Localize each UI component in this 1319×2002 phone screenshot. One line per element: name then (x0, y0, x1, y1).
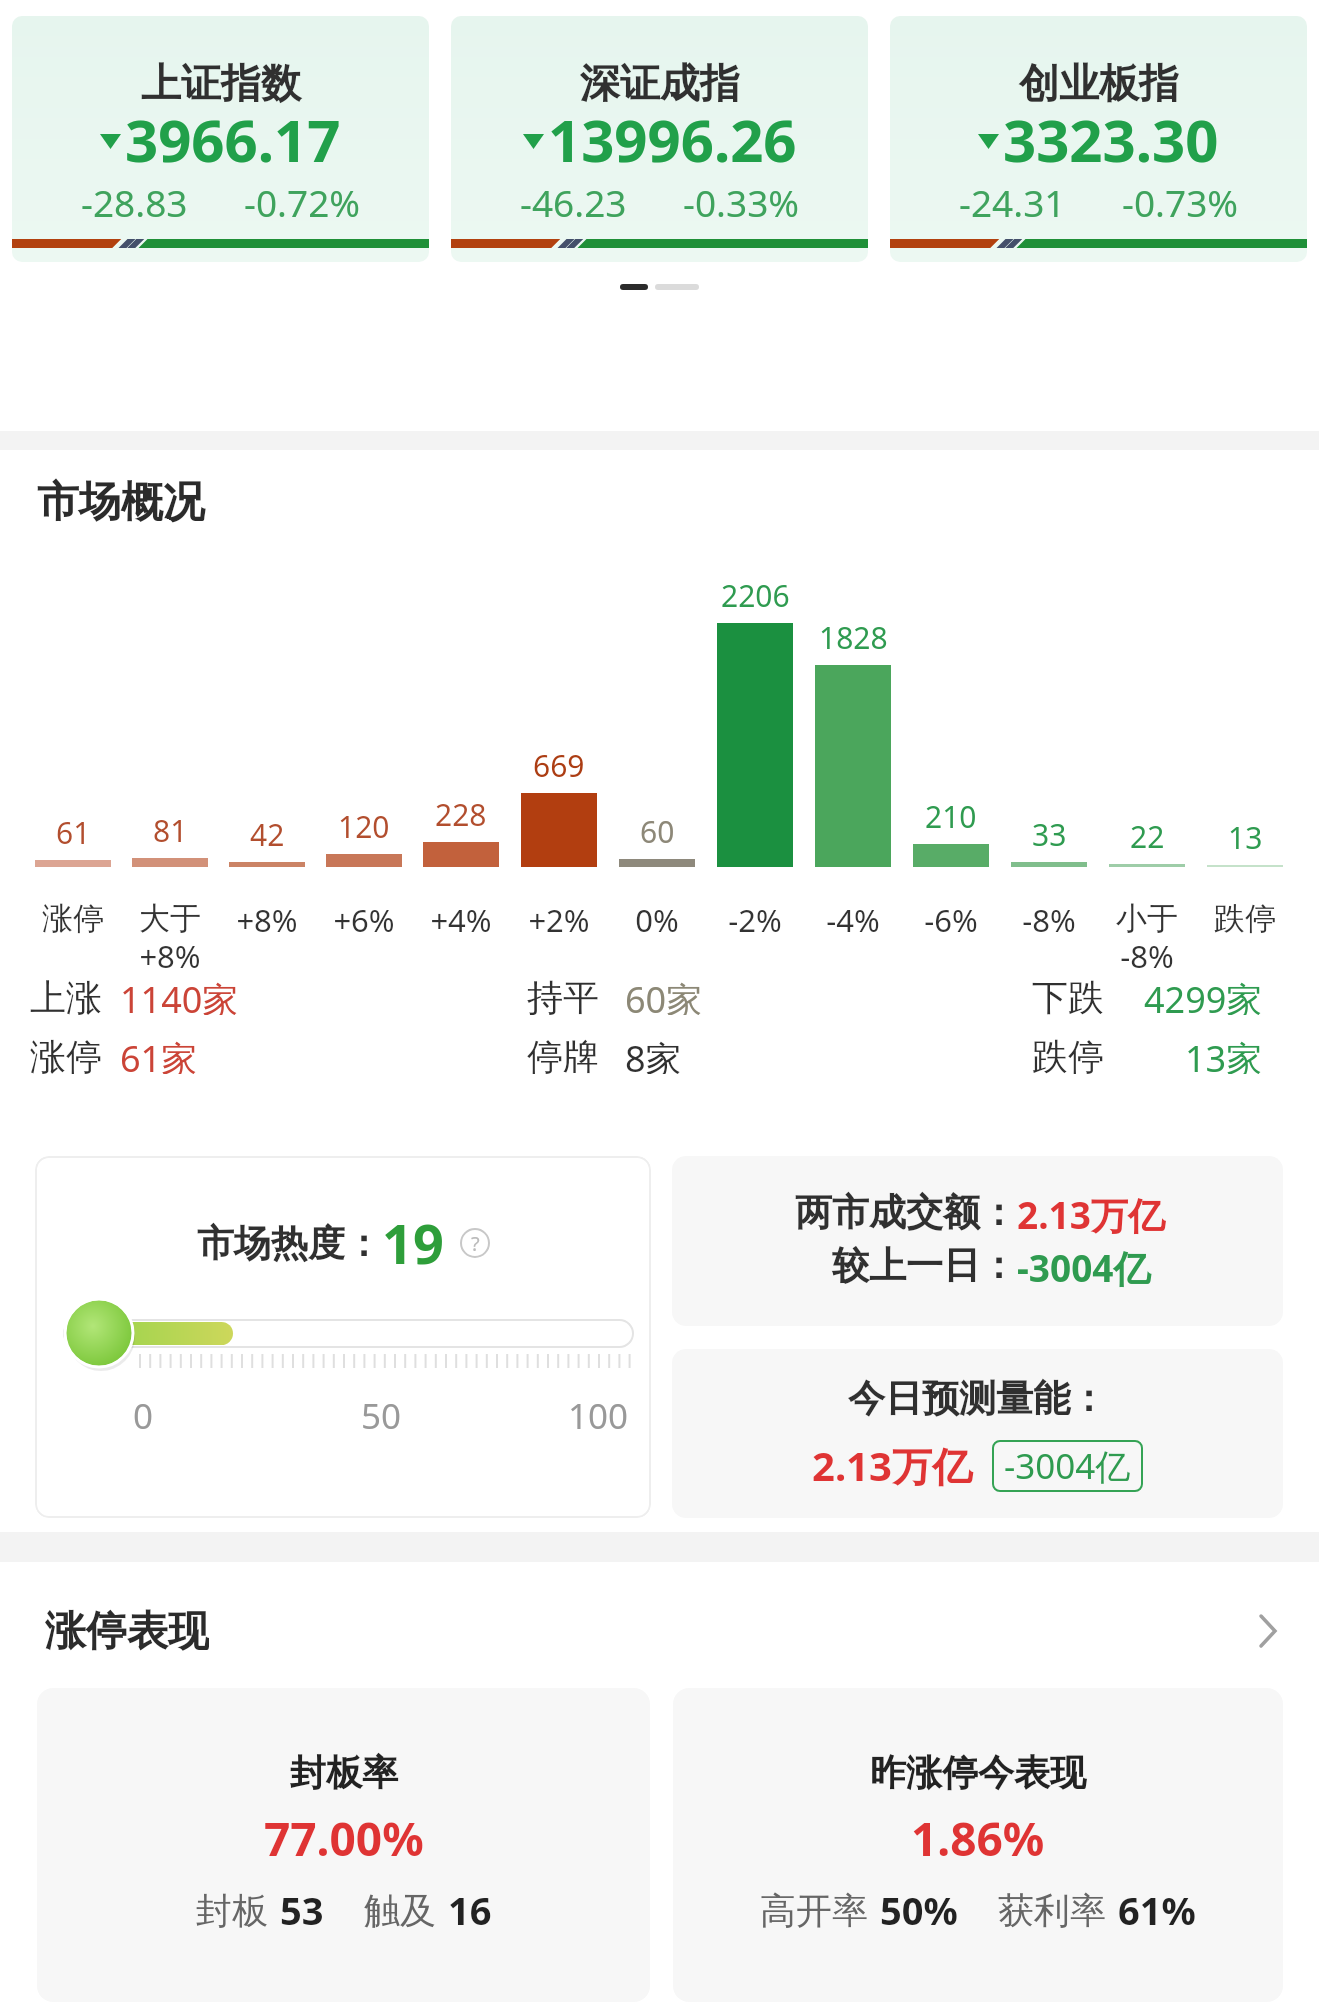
staticText: +4% (430, 899, 492, 941)
staticText: ? (471, 1230, 480, 1257)
staticText: 封板 (196, 1888, 268, 1933)
staticText: 3966.17 (125, 100, 341, 179)
staticText: -24.31 (959, 177, 1066, 227)
staticText: -0.33% (683, 177, 800, 227)
staticText: -4% (826, 899, 880, 941)
button[interactable]: 封板率 (37, 1688, 650, 2002)
staticText: +8% (236, 899, 298, 941)
staticText: 涨停 (42, 899, 104, 938)
button[interactable]: 市场热度： (35, 1156, 651, 1518)
staticText: 81 (153, 810, 188, 851)
staticText: 2.13万亿 (812, 1438, 972, 1493)
button[interactable]: 涨停表现 (45, 1606, 1277, 1656)
staticText: 涨停表现 (45, 1606, 209, 1656)
staticText: +2% (528, 899, 590, 941)
staticText: 3323.30 (1003, 100, 1219, 179)
staticText: 市场热度： (197, 1220, 382, 1267)
staticText: -3004亿 (1004, 1442, 1131, 1490)
staticText: 今日预测量能： (848, 1375, 1107, 1422)
staticText: 210 (925, 796, 977, 837)
button[interactable]: 今日预测量能： (672, 1349, 1283, 1518)
staticText: 深证成指 (580, 58, 740, 108)
staticText: 61 (56, 812, 91, 853)
staticText: -6% (924, 899, 978, 941)
staticText: 42 (250, 814, 285, 855)
staticText: 77.00% (264, 1807, 424, 1870)
staticText: -46.23 (520, 177, 627, 227)
staticText: 大于 +8% (139, 899, 201, 975)
staticText: 13 (1228, 817, 1263, 858)
staticText: 昨涨停今表现 (870, 1750, 1086, 1795)
staticText: 61% (1118, 1884, 1196, 1936)
staticText: -3004亿 (1017, 1242, 1151, 1293)
staticText: 上证指数 (141, 58, 301, 108)
staticText: 两市成交额： (795, 1189, 1017, 1236)
staticText: 1.86% (911, 1807, 1045, 1870)
staticText: 50% (880, 1884, 958, 1936)
staticText: 13家 (1185, 1034, 1263, 1074)
staticText: 创业板指 (1019, 58, 1179, 108)
staticText: +6% (333, 899, 395, 941)
staticText: 下跌 (1032, 975, 1104, 1015)
staticText: 跌停 (1214, 899, 1276, 938)
staticText: -2% (728, 899, 782, 941)
button[interactable]: 上证指数 (12, 16, 429, 262)
staticText: 0% (635, 899, 679, 941)
staticText: 封板率 (290, 1750, 398, 1795)
button[interactable]: 两市成交额： (672, 1156, 1283, 1326)
staticText: 跌停 (1032, 1034, 1104, 1074)
staticText: 120 (338, 806, 390, 847)
button[interactable]: 创业板指 (890, 16, 1307, 262)
staticText: -0.72% (244, 177, 361, 227)
staticText: 33 (1032, 814, 1067, 855)
staticText: 获利率 (998, 1888, 1106, 1933)
staticText: 53 (280, 1884, 324, 1936)
staticText: -28.83 (81, 177, 188, 227)
staticText: 停牌 (527, 1034, 599, 1074)
staticText: 小于 -8% (1116, 899, 1178, 975)
staticText: 228 (435, 794, 487, 835)
staticText: 100 (563, 1392, 633, 1440)
staticText: 8家 (625, 1034, 682, 1074)
staticText: 上涨 (30, 975, 102, 1015)
staticText: 持平 (527, 975, 599, 1015)
staticText: 60 (640, 811, 675, 852)
button[interactable]: 昨涨停今表现 (673, 1688, 1283, 2002)
staticText: -8% (1022, 899, 1076, 941)
staticText: 触及 (364, 1888, 436, 1933)
staticText: 60家 (625, 975, 703, 1015)
staticText: 19 (382, 1206, 444, 1280)
staticText: 0 (128, 1392, 158, 1440)
staticText: 16 (448, 1884, 492, 1936)
staticText: 1828 (819, 617, 888, 658)
staticText: 13996.26 (548, 100, 797, 179)
staticText: 50 (358, 1392, 404, 1440)
staticText: 高开率 (760, 1888, 868, 1933)
staticText: 涨停 (30, 1034, 102, 1074)
staticText: 市场概况 (37, 476, 205, 529)
staticText: 22 (1130, 816, 1165, 857)
staticText: 4299家 (1144, 975, 1263, 1015)
staticText: 2206 (721, 575, 790, 616)
staticText: 61家 (120, 1034, 198, 1074)
staticText: 1140家 (120, 975, 239, 1015)
staticText: -0.73% (1122, 177, 1239, 227)
staticText: 2.13万亿 (1017, 1189, 1165, 1240)
staticText: 较上一日： (832, 1242, 1017, 1289)
button[interactable]: 深证成指 (451, 16, 868, 262)
staticText: 669 (533, 745, 585, 786)
